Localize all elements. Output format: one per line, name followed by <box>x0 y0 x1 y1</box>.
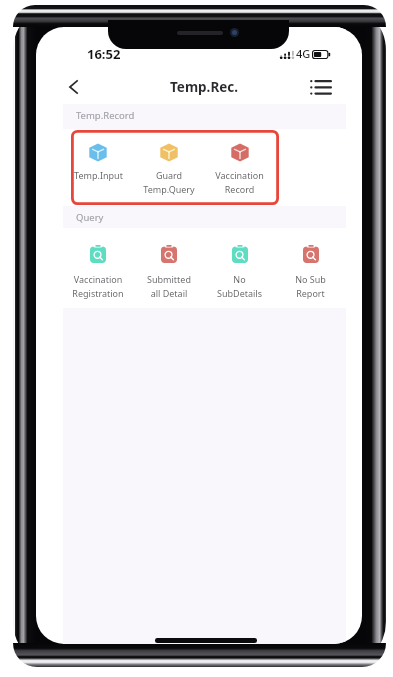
button[interactable]: No Sub Report <box>275 228 346 308</box>
staticText: No Sub Report <box>295 273 326 299</box>
staticText: Vaccination Registration <box>72 273 124 299</box>
staticText: Temp.Input <box>74 169 123 181</box>
staticText: 16:52 <box>87 45 121 63</box>
button[interactable]: Submitted all Detail <box>133 228 204 308</box>
staticText: Temp.Rec. <box>170 78 239 96</box>
button[interactable]: Guard Temp.Query <box>133 129 204 206</box>
button[interactable]: Temp.Input <box>63 129 133 206</box>
staticText: Temp.Record <box>76 109 135 122</box>
button[interactable]: Back <box>63 70 97 104</box>
button[interactable]: No SubDetails <box>204 228 275 308</box>
button[interactable]: Vaccination Record <box>204 129 275 206</box>
button[interactable]: Vaccination Registration <box>63 228 133 308</box>
button[interactable]: Menu <box>312 70 346 104</box>
staticText: Guard Temp.Query <box>143 169 195 195</box>
staticText: Submitted all Detail <box>147 273 191 299</box>
staticText: No SubDetails <box>217 273 262 299</box>
staticText: Query <box>76 211 104 224</box>
staticText: Vaccination Record <box>215 169 264 195</box>
staticText: 4G <box>296 46 311 61</box>
